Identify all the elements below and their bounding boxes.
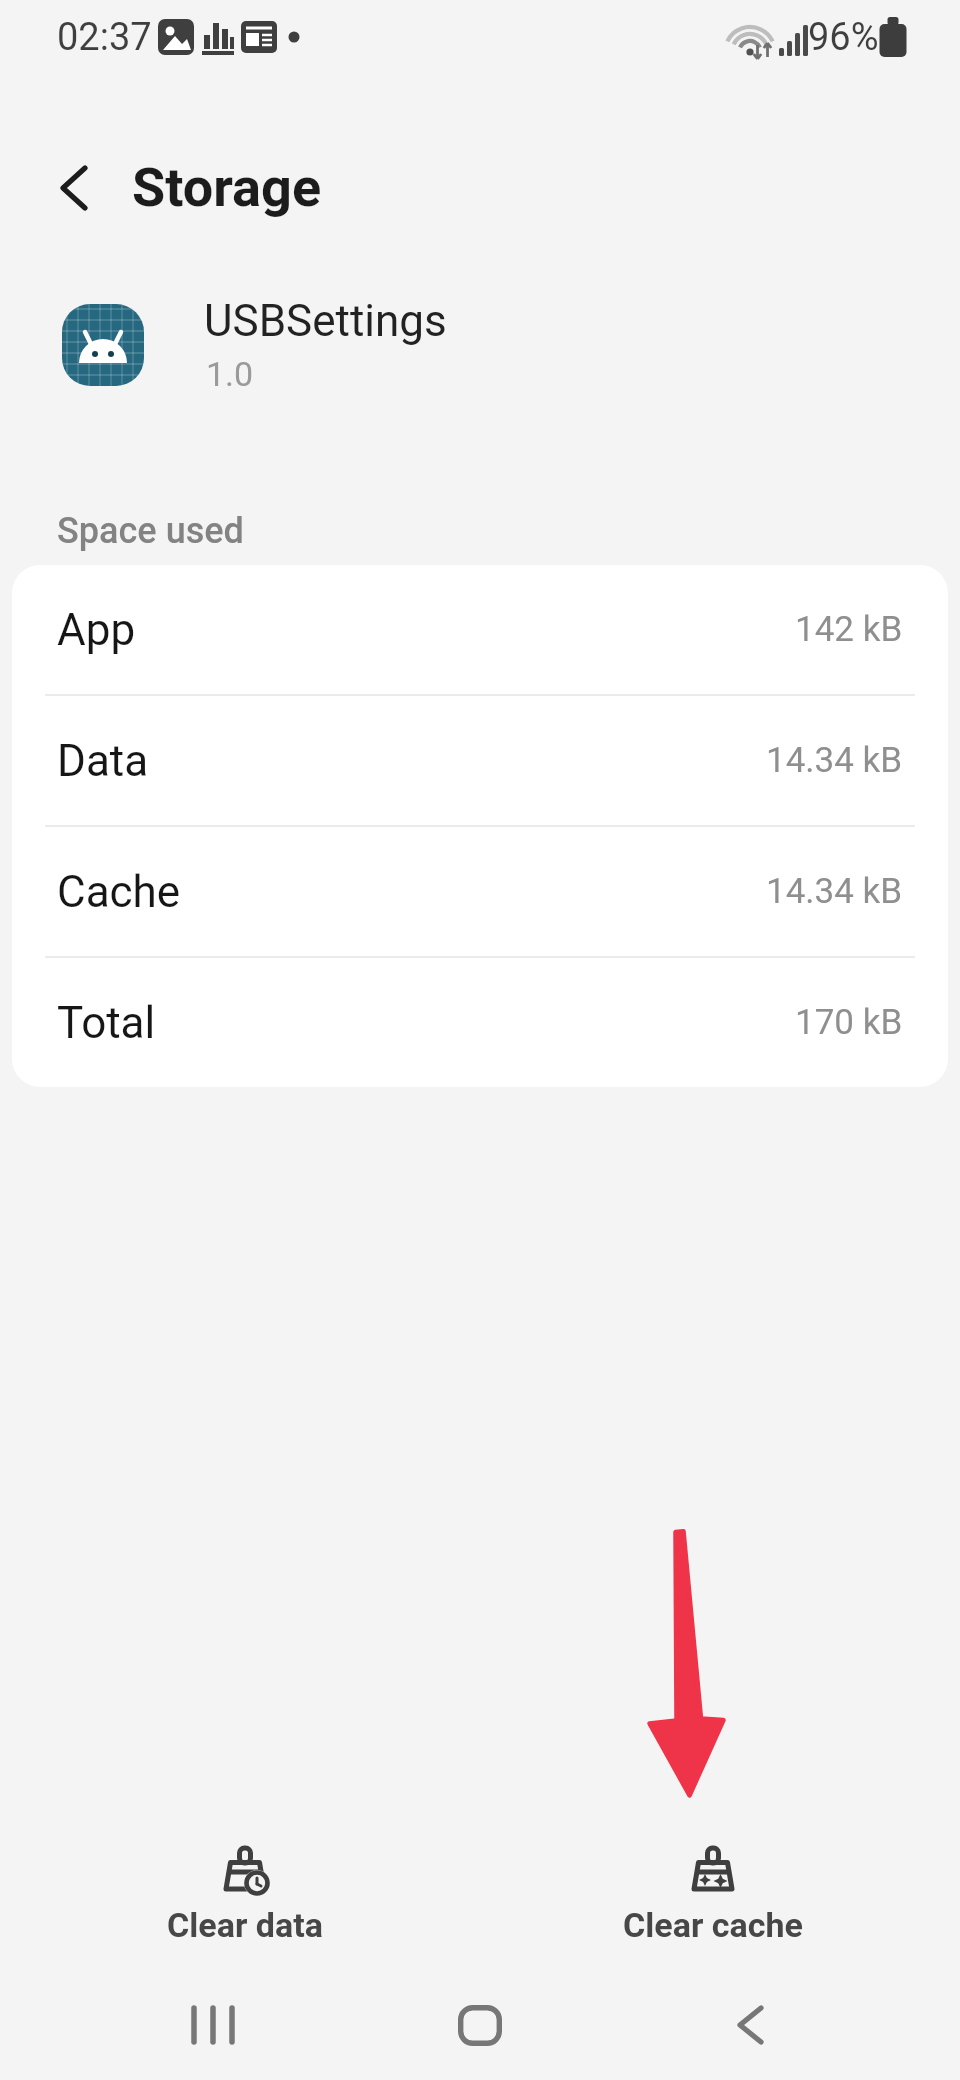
staticText: 142 kB [795,609,903,650]
staticText: 96% [808,15,879,60]
staticText: Cache [57,866,181,918]
staticText: Data [57,735,149,787]
button[interactable] [440,1995,520,2055]
button[interactable]: Cache [57,827,903,956]
staticText: 1.0 [206,354,254,394]
staticText: 14.34 kB [766,740,903,781]
staticText: Space used [57,510,244,552]
button[interactable]: Total [57,958,903,1087]
button[interactable]: Clear data [125,1846,365,1945]
staticText: 14.34 kB [766,871,903,912]
staticText: Clear data [167,1905,323,1945]
staticText: 170 kB [795,1002,903,1043]
staticText: App [57,604,136,656]
staticText: Storage [132,156,322,219]
button[interactable]: Clear cache [593,1846,833,1945]
staticText: Total [57,997,156,1049]
button[interactable]: Data [57,696,903,825]
button[interactable] [710,1995,790,2055]
staticText: Clear cache [623,1905,803,1945]
staticText: 02:37 [57,15,152,60]
button[interactable] [48,158,100,218]
button[interactable] [174,1995,254,2055]
staticText: USBSettings [204,295,447,347]
button[interactable]: App [57,565,903,694]
